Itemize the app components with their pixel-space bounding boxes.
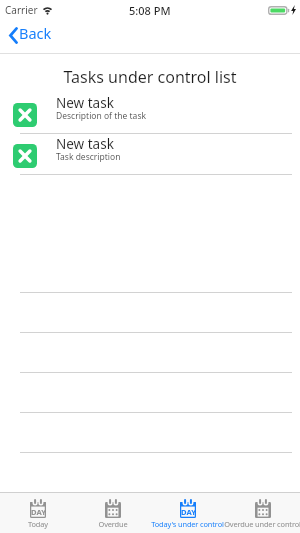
button[interactable]: Overdue	[75, 493, 150, 533]
staticText: Task description	[56, 151, 121, 163]
staticText: Overdue under control	[224, 519, 300, 529]
button[interactable]: DAY	[150, 493, 225, 533]
staticText: DAY	[31, 507, 46, 517]
staticText: Today's under control	[151, 519, 224, 529]
button[interactable]: DAY	[0, 493, 75, 533]
staticText: Carrier	[5, 3, 38, 17]
button[interactable]: New task	[0, 93, 300, 134]
staticText: DAY	[181, 507, 196, 517]
staticText: New task	[56, 94, 114, 112]
button[interactable]: New task	[0, 134, 300, 175]
staticText: Tasks under control list	[0, 66, 300, 88]
staticText: New task	[56, 135, 114, 153]
staticText: Back	[19, 23, 52, 43]
staticText: Overdue	[98, 519, 128, 529]
staticText: Today	[28, 519, 48, 529]
button[interactable]: Overdue under control	[225, 493, 300, 533]
staticText: 5:08 PM	[129, 3, 171, 18]
staticText: Description of the task	[56, 110, 146, 122]
button[interactable]: Back	[0, 21, 60, 49]
